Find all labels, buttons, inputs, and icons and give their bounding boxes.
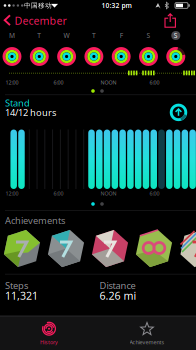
staticText: 6.26 mi bbox=[99, 288, 136, 303]
staticText: Achievements bbox=[129, 339, 164, 346]
staticText: S bbox=[146, 31, 150, 40]
staticText: December bbox=[14, 13, 66, 28]
staticText: S bbox=[174, 31, 178, 40]
button[interactable] bbox=[170, 104, 187, 121]
staticText: NOON bbox=[100, 190, 116, 197]
staticText: History bbox=[40, 339, 58, 346]
button[interactable] bbox=[90, 228, 130, 268]
button[interactable]: December bbox=[3, 13, 66, 28]
staticText: Stand bbox=[5, 97, 30, 109]
staticText: 6:00 bbox=[149, 190, 159, 197]
staticText: hours bbox=[30, 106, 56, 119]
staticText: 12:00 bbox=[5, 190, 18, 197]
staticText: T bbox=[37, 31, 41, 40]
staticText: T bbox=[92, 31, 96, 40]
staticText: 10:32 pm bbox=[101, 1, 131, 10]
staticText: 中国移动 bbox=[24, 1, 52, 10]
staticText: M bbox=[9, 31, 15, 40]
button[interactable]: History bbox=[0, 317, 98, 350]
staticText: 6:00 bbox=[149, 79, 159, 86]
staticText: 6:00 bbox=[53, 79, 63, 86]
staticText: W bbox=[64, 31, 70, 40]
staticText: NOON bbox=[100, 79, 116, 86]
button[interactable] bbox=[46, 228, 86, 268]
button[interactable] bbox=[178, 228, 196, 268]
button[interactable] bbox=[134, 228, 174, 268]
staticText: Distance bbox=[99, 279, 135, 292]
staticText: Achievements bbox=[5, 214, 65, 227]
button[interactable] bbox=[2, 228, 42, 268]
staticText: F bbox=[120, 31, 123, 40]
staticText: 12:00 bbox=[5, 79, 18, 86]
staticText: Steps bbox=[5, 279, 28, 292]
button[interactable]: Achievements bbox=[98, 317, 196, 350]
staticText: 11,321 bbox=[5, 288, 38, 303]
button[interactable] bbox=[164, 13, 177, 28]
staticText: 6:00 bbox=[53, 190, 63, 197]
staticText: 14/12 bbox=[5, 106, 28, 119]
